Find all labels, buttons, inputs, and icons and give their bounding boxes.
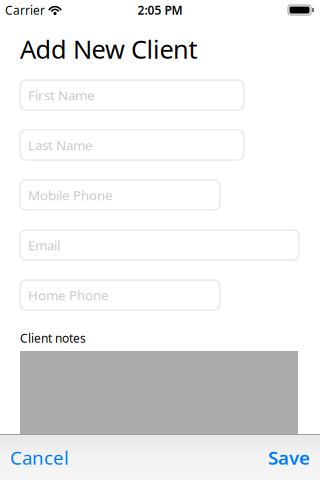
- staticText: 2:05 PM: [137, 2, 182, 18]
- staticText: Email: [28, 236, 60, 254]
- staticText: Last Name: [28, 136, 93, 154]
- staticText: Mobile Phone: [28, 186, 113, 204]
- staticText: First Name: [28, 86, 95, 104]
- button[interactable]: Save: [268, 445, 310, 470]
- staticText: Client notes: [20, 330, 86, 346]
- staticText: Add New Client: [20, 32, 197, 66]
- staticText: Cancel: [10, 445, 69, 470]
- staticText: Home Phone: [28, 286, 109, 304]
- button[interactable]: Cancel: [10, 445, 69, 470]
- staticText: Carrier: [5, 2, 45, 18]
- staticText: Save: [268, 445, 310, 470]
